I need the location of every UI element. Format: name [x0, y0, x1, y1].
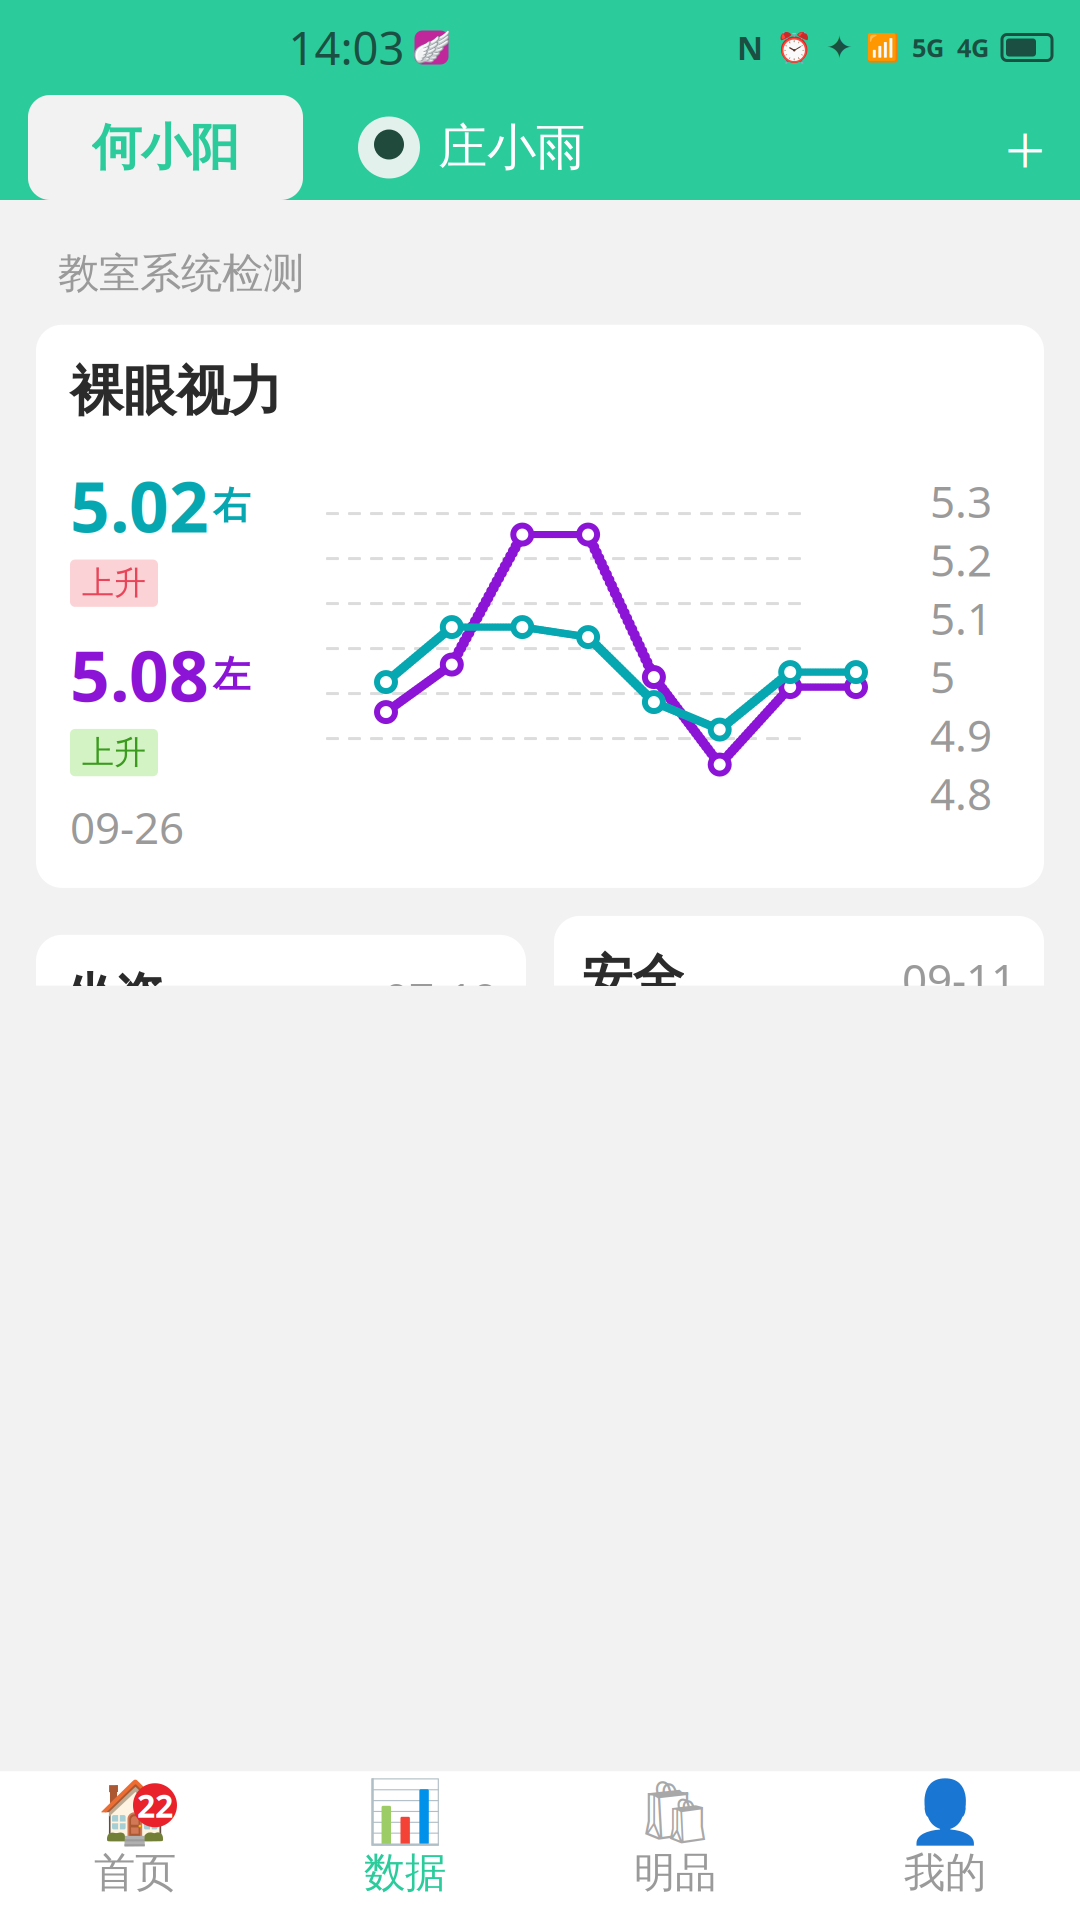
staticText: 5: [930, 647, 955, 705]
staticText: +: [1004, 100, 1045, 195]
staticText: 何小阳: [92, 117, 239, 178]
button[interactable]: 专注: [36, 1478, 526, 1920]
staticText: 4.9: [930, 705, 992, 764]
button[interactable]: 坐姿: [36, 935, 526, 1431]
button[interactable]: 🏠: [0, 1783, 270, 1898]
staticText: 5.2: [930, 530, 992, 589]
staticText: 左: [213, 652, 250, 698]
staticText: 09-26: [70, 798, 184, 856]
button[interactable]: 🛍: [540, 1783, 810, 1898]
staticText: 5.08: [70, 629, 209, 721]
staticText: 裸眼视力: [70, 359, 282, 424]
staticText: 明品: [634, 1847, 716, 1898]
staticText: 🪽: [411, 29, 451, 66]
staticText: N: [737, 26, 763, 69]
staticText: 22: [137, 1784, 173, 1826]
staticText: 09-11: [902, 950, 1016, 1008]
staticText: 我的: [904, 1847, 986, 1898]
staticText: 5G: [912, 31, 944, 64]
button[interactable]: 安全: [554, 916, 1044, 1450]
staticText: 👤: [907, 1777, 983, 1847]
staticText: 坐姿: [64, 967, 166, 1029]
staticText: 14:03: [288, 17, 404, 78]
staticText: 庄小雨: [438, 117, 585, 178]
staticText: ⏰: [776, 31, 813, 64]
staticText: 5.3: [930, 472, 992, 530]
staticText: 上升: [82, 733, 146, 772]
staticText: 🛍: [636, 1777, 714, 1847]
staticText: 07-19: [384, 969, 498, 1027]
button[interactable]: 👤: [810, 1783, 1080, 1898]
button[interactable]: 庄小雨: [303, 95, 585, 200]
staticText: 首页: [94, 1847, 176, 1898]
button[interactable]: 📊: [270, 1783, 540, 1898]
staticText: ✦: [826, 29, 853, 66]
staticText: 右: [213, 483, 250, 528]
staticText: 📶: [866, 32, 899, 63]
staticText: 4.8: [930, 764, 992, 822]
button[interactable]: Add account: [970, 95, 1080, 200]
staticText: 上升: [82, 564, 146, 603]
button[interactable]: 裸眼视力: [36, 325, 1044, 888]
staticText: 📊: [367, 1777, 443, 1847]
button[interactable]: 何小阳: [28, 95, 303, 200]
staticText: 5.02: [70, 459, 209, 552]
staticText: 教室系统检测: [58, 248, 304, 299]
staticText: 5.1: [930, 589, 992, 647]
staticText: 安全: [582, 948, 684, 1010]
staticText: 数据: [364, 1847, 446, 1898]
staticText: 🏠: [97, 1777, 173, 1847]
staticText: 4G: [957, 31, 989, 64]
